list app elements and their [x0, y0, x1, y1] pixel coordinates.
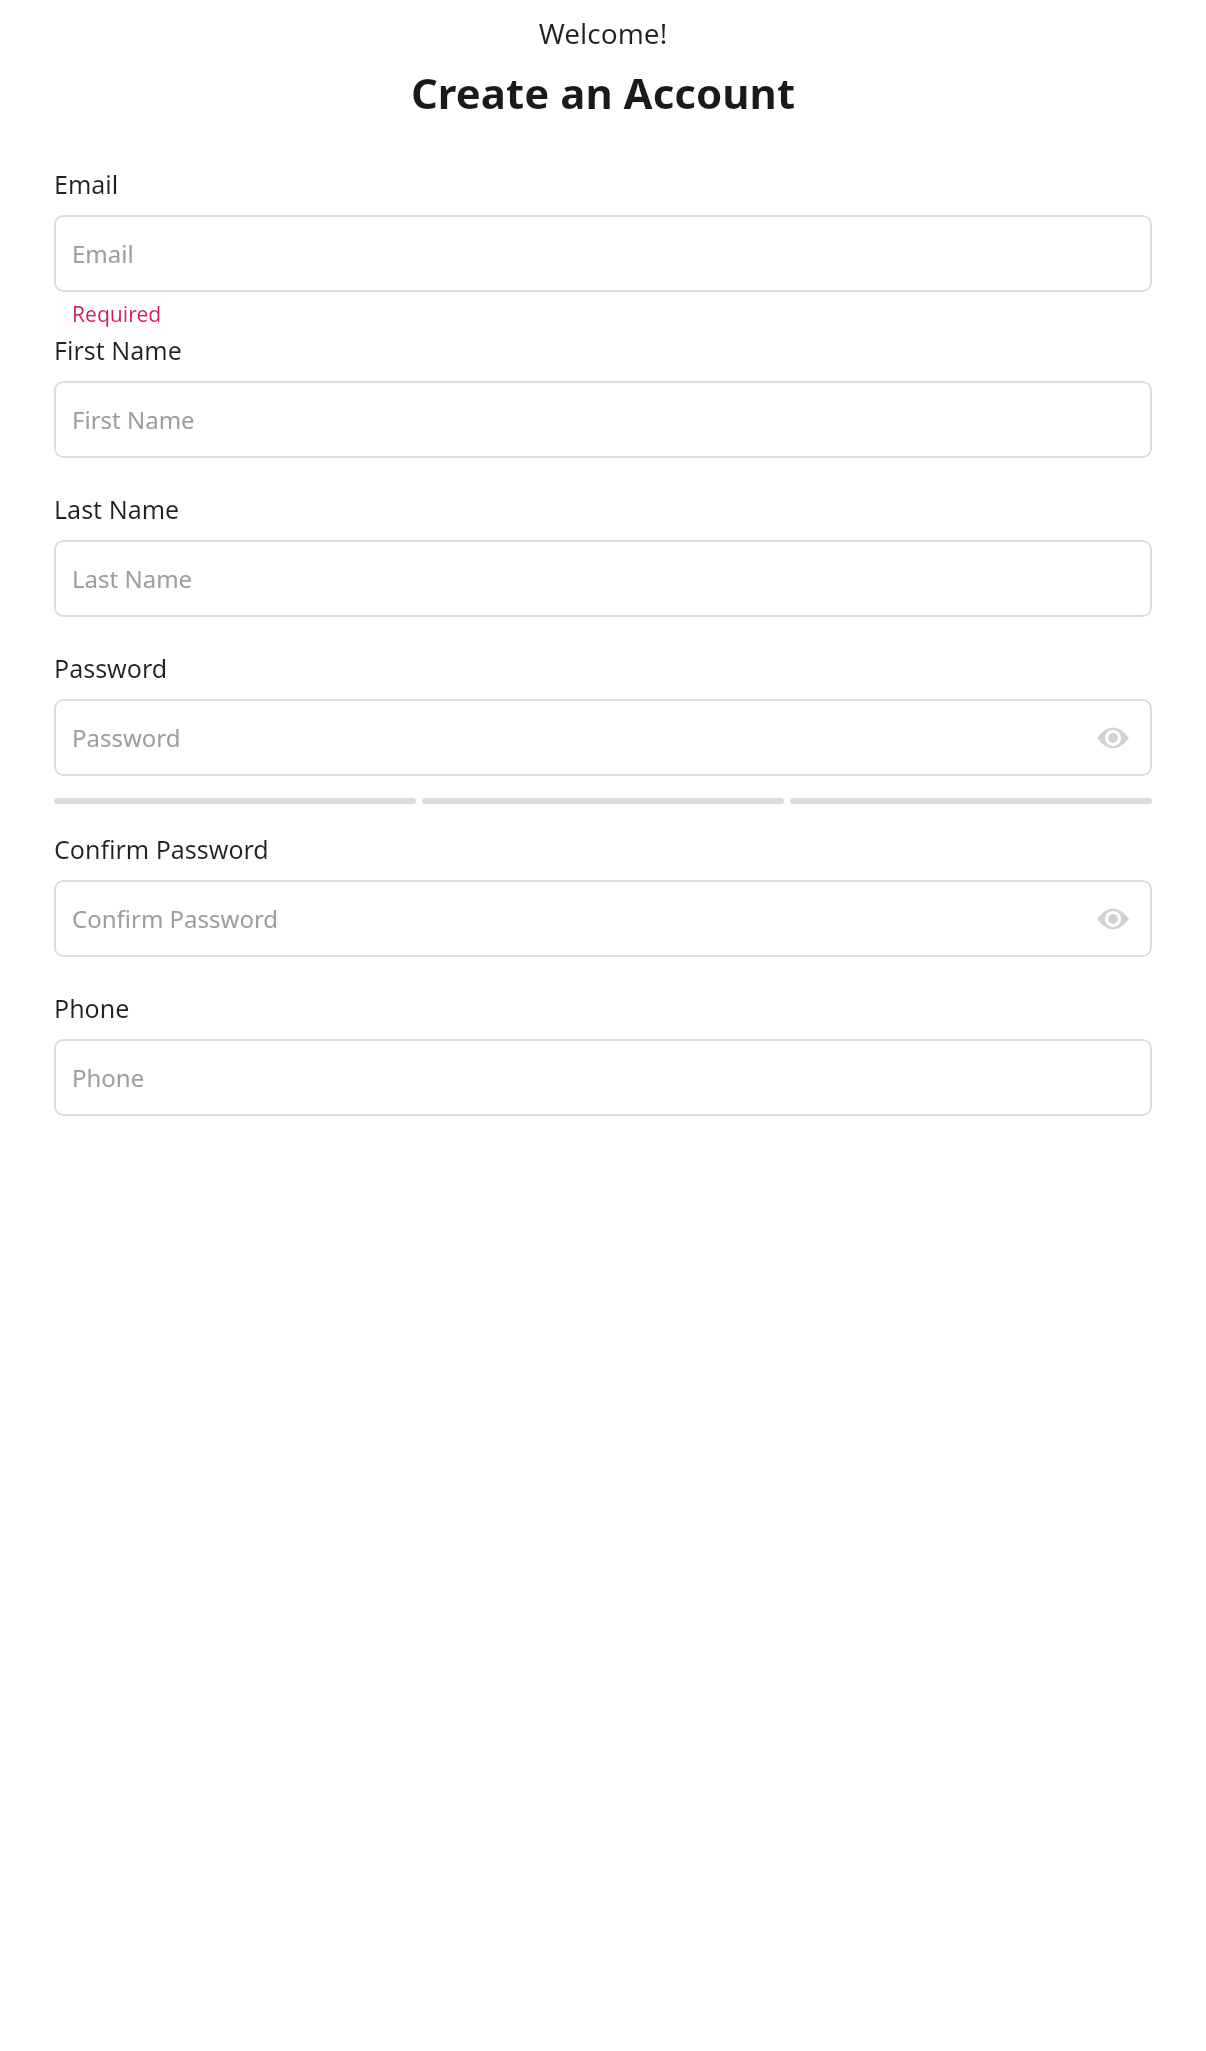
staticText: Confirm Password [54, 832, 269, 866]
button[interactable]: Phone [54, 1039, 1152, 1116]
button[interactable]: Show password [1086, 711, 1140, 765]
button[interactable]: First Name [54, 381, 1152, 458]
staticText: Phone [54, 991, 130, 1025]
staticText: First Name [54, 333, 182, 367]
staticText: Required [72, 300, 162, 329]
staticText: Password [54, 651, 168, 685]
button[interactable]: Password [54, 699, 1152, 776]
staticText: Confirm Password [72, 902, 279, 935]
staticText: Last Name [72, 562, 193, 595]
staticText: Create an Account [0, 64, 1206, 121]
button[interactable]: Show password [1086, 892, 1140, 946]
staticText: Welcome! [0, 14, 1206, 52]
staticText: Last Name [54, 492, 180, 526]
staticText: First Name [72, 403, 195, 436]
staticText: Password [72, 721, 181, 754]
button[interactable]: Confirm Password [54, 880, 1152, 957]
button[interactable]: Last Name [54, 540, 1152, 617]
staticText: Phone [72, 1061, 145, 1094]
button[interactable]: Email [54, 215, 1152, 292]
staticText: Email [72, 237, 134, 270]
staticText: Email [54, 167, 119, 201]
